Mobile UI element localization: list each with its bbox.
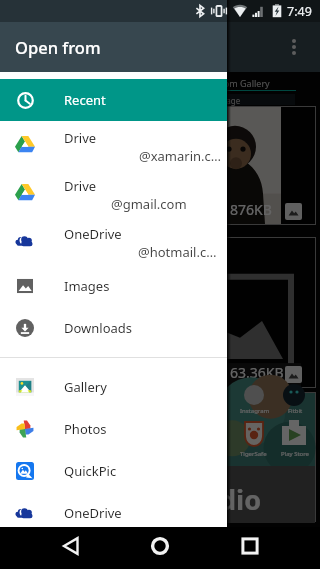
staticText: @xamarin.c… <box>139 147 222 165</box>
staticText: 63.36KB <box>230 363 284 382</box>
button[interactable]: Drive <box>0 121 227 169</box>
staticText: Drive <box>64 177 97 195</box>
staticText: Downloads <box>64 319 133 337</box>
staticText: TigerSafe <box>240 450 267 458</box>
staticText: QuickPic <box>64 462 117 480</box>
button[interactable]: OneDrive <box>0 217 227 265</box>
button[interactable]: Photos <box>0 408 227 450</box>
staticText: Recent <box>64 91 106 109</box>
button[interactable]: Home <box>142 528 178 564</box>
button[interactable]: Recent <box>0 79 227 121</box>
staticText: @hotmail.c… <box>138 243 217 261</box>
button[interactable]: Images <box>0 265 227 307</box>
staticText: Drive <box>64 129 97 147</box>
staticText: Gallery <box>64 378 107 396</box>
staticText: Photos <box>64 420 107 438</box>
button[interactable]: Recent apps <box>232 528 268 564</box>
staticText: 7:49 <box>287 3 312 20</box>
button[interactable]: Drive <box>0 169 227 217</box>
button[interactable]: Instagram <box>0 393 315 521</box>
staticText: Pick from Gallery <box>198 77 270 89</box>
staticText: Play Store <box>281 450 309 458</box>
staticText: @gmail.com <box>111 195 187 213</box>
button[interactable]: Gallery <box>0 366 227 408</box>
staticText: OneDrive <box>64 504 122 522</box>
staticText: Pick Image <box>199 95 241 106</box>
staticText: Fitbit <box>288 407 303 415</box>
button[interactable]: 63.36KB <box>0 238 315 387</box>
button[interactable]: More options <box>276 29 312 65</box>
staticText: OneDrive <box>64 225 122 243</box>
staticText: Open from <box>15 36 101 58</box>
button[interactable]: Downloads <box>0 307 227 349</box>
staticText: Instagram <box>240 407 270 415</box>
staticText: 876KB <box>230 200 272 219</box>
button[interactable]: Back <box>53 528 89 564</box>
button[interactable]: QuickPic <box>0 450 227 492</box>
button[interactable]: 876KB <box>0 107 315 224</box>
button[interactable]: OneDrive <box>0 492 227 534</box>
staticText: dio <box>219 481 262 518</box>
staticText: Images <box>64 277 110 295</box>
